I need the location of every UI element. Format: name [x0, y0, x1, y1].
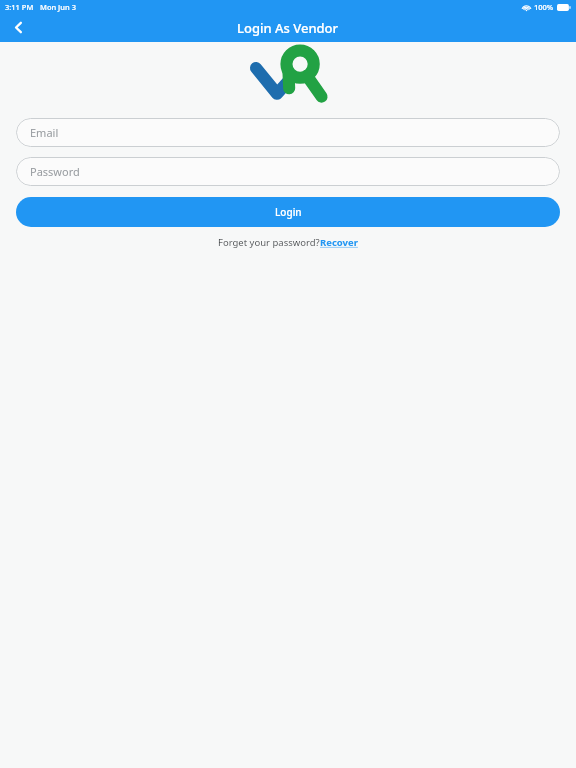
button[interactable]: Recover: [320, 236, 358, 249]
staticText: 100%: [534, 2, 554, 12]
staticText: Forget your password?: [218, 236, 320, 249]
staticText: Password: [30, 164, 80, 179]
staticText: Recover: [320, 236, 358, 249]
button[interactable]: Back: [0, 13, 36, 42]
button[interactable]: Email: [16, 118, 560, 147]
button[interactable]: Login: [16, 197, 560, 227]
staticText: Login As Vendor: [237, 19, 339, 37]
staticText: Mon Jun 3: [40, 2, 76, 12]
staticText: Email: [30, 125, 59, 140]
staticText: 3:11 PM: [5, 2, 34, 12]
staticText: Login: [275, 205, 302, 219]
button[interactable]: Password: [16, 157, 560, 186]
